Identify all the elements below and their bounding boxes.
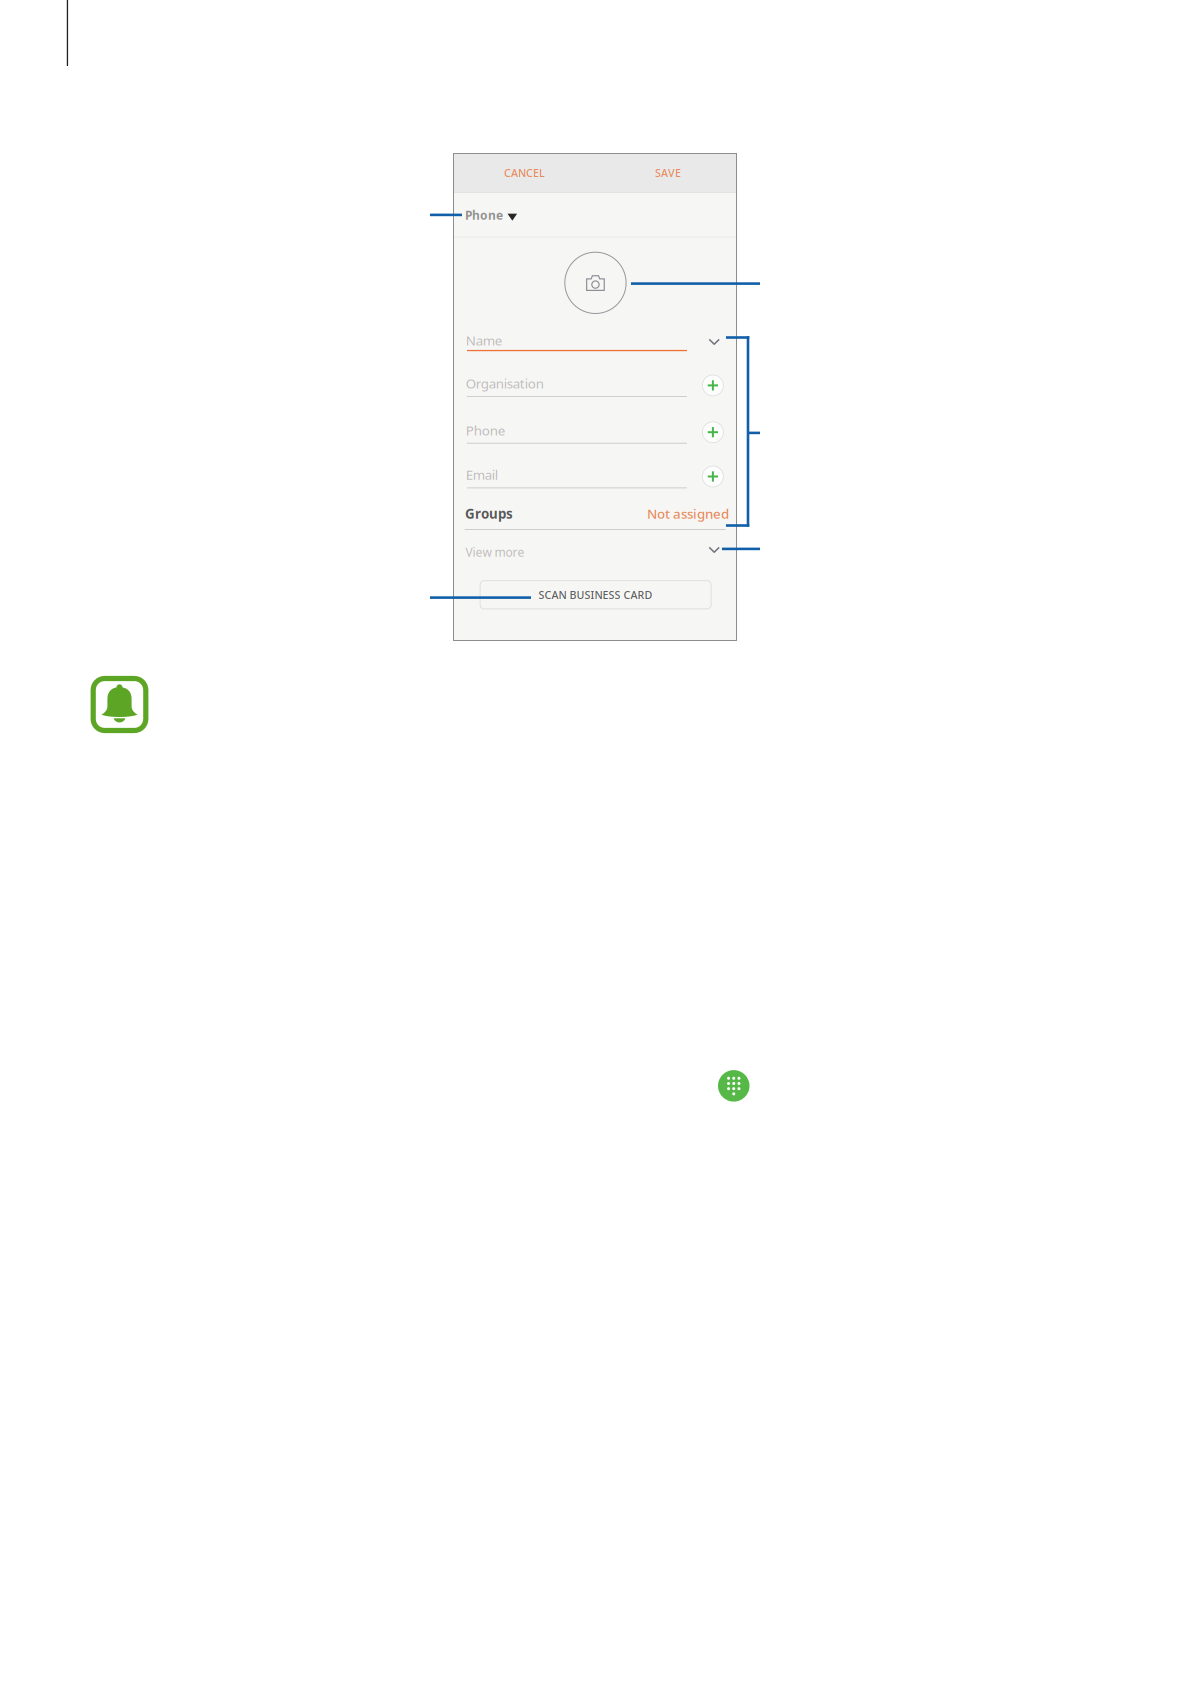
- button[interactable]: Phone: [453, 153, 736, 640]
- button[interactable]: Show more fields: [453, 153, 736, 640]
- staticText: Email: [466, 466, 498, 483]
- staticText: SCAN BUSINESS CARD: [539, 588, 653, 602]
- staticText: Name: [466, 331, 503, 349]
- button[interactable]: SAVE: [453, 153, 736, 640]
- button[interactable]: Keypad: [0, 0, 1191, 1684]
- button[interactable]: Add email address: [453, 153, 736, 640]
- button[interactable]: Groups: [453, 153, 736, 640]
- staticText: Organisation: [466, 374, 544, 392]
- staticText: Groups: [465, 505, 513, 522]
- staticText: CANCEL: [504, 166, 545, 180]
- button[interactable]: SCAN BUSINESS CARD: [453, 153, 736, 640]
- button[interactable]: Add phone number: [453, 153, 736, 640]
- button[interactable]: Add organisation: [453, 153, 736, 640]
- staticText: Phone: [465, 207, 503, 223]
- button[interactable]: CANCEL: [453, 153, 736, 640]
- staticText: Phone: [466, 421, 506, 439]
- staticText: Not assigned: [647, 505, 729, 522]
- staticText: SAVE: [655, 166, 681, 180]
- button[interactable]: Add photo: [453, 153, 736, 640]
- staticText: View more: [465, 544, 524, 560]
- button[interactable]: Expand name fields: [453, 153, 736, 640]
- button[interactable]: View more: [453, 153, 736, 640]
